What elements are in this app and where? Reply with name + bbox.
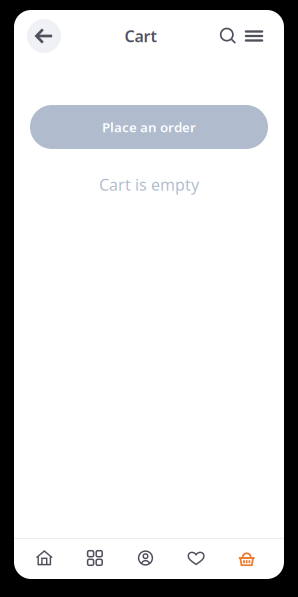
staticText: Cart is empty xyxy=(99,174,199,195)
staticText: Cart xyxy=(124,25,156,47)
button[interactable]: Catalog xyxy=(70,549,120,567)
button[interactable]: Menu xyxy=(241,24,267,48)
button[interactable]: Back xyxy=(27,19,61,53)
button[interactable]: Cart xyxy=(221,549,272,567)
button[interactable]: Home xyxy=(19,549,70,567)
staticText: Place an order xyxy=(102,118,196,136)
button[interactable]: Favorites xyxy=(171,549,221,567)
button[interactable]: Profile xyxy=(120,549,171,567)
button[interactable]: Search xyxy=(215,24,241,48)
button[interactable]: Place an order xyxy=(30,105,268,149)
